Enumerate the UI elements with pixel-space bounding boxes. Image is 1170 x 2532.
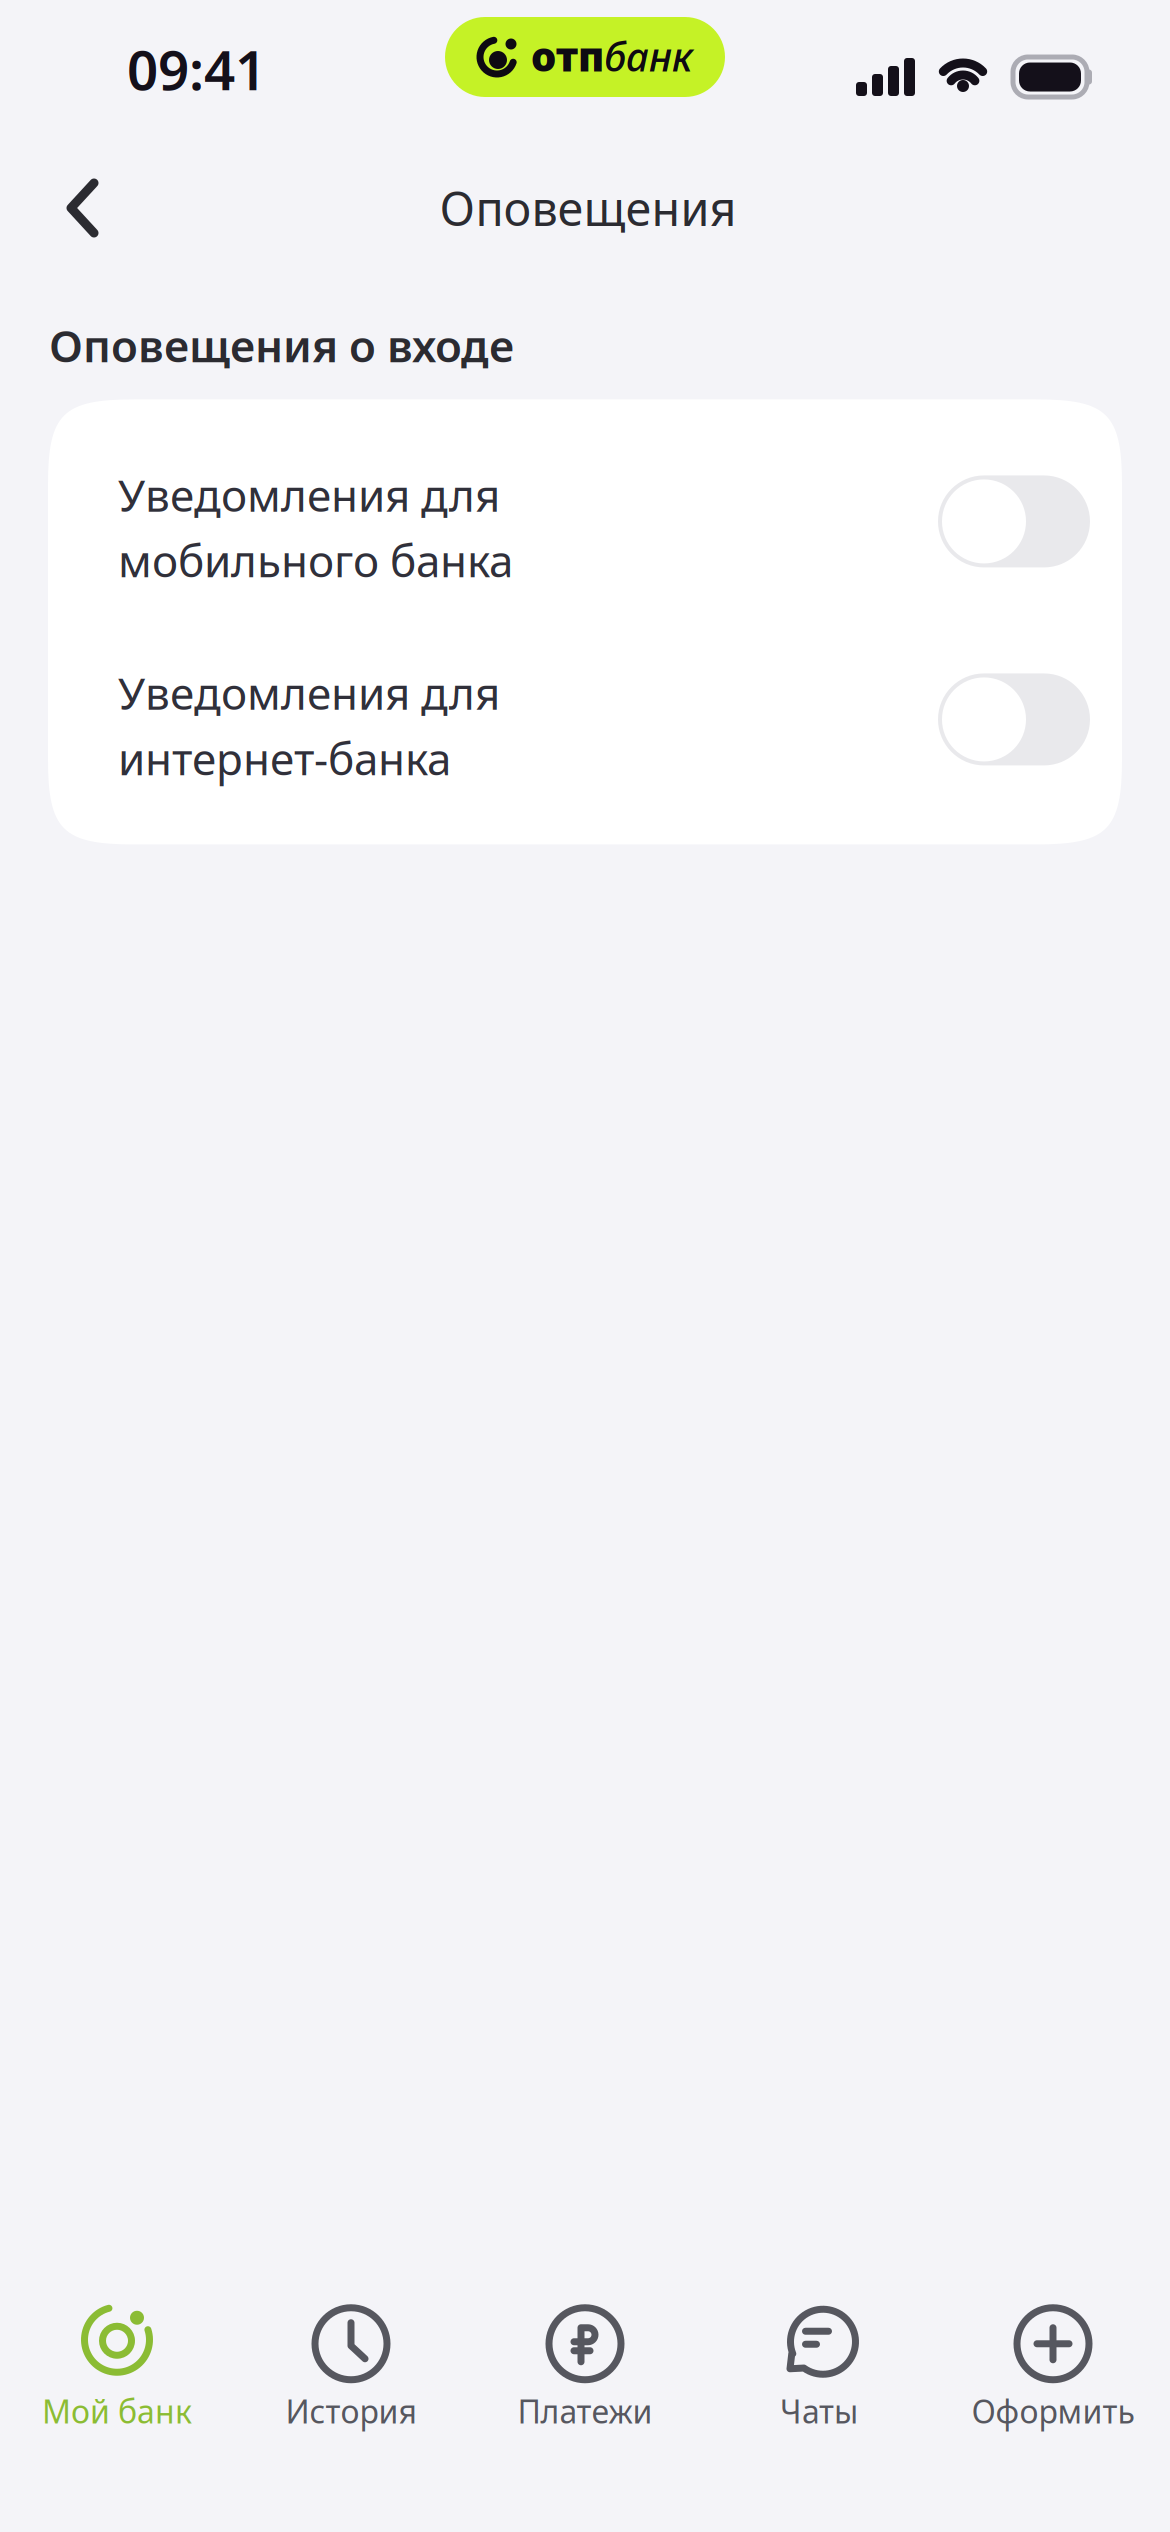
staticText: Уведомления для <box>118 663 500 722</box>
button[interactable]: Чаты <box>702 2296 936 2440</box>
button[interactable]: Оформить <box>936 2296 1170 2440</box>
button[interactable]: Назад <box>38 138 143 260</box>
button[interactable]: Уведомления для <box>48 626 1122 824</box>
staticText: Чаты <box>780 2390 858 2432</box>
button[interactable]: Уведомления для <box>48 428 1122 626</box>
staticText: Платежи <box>517 2390 652 2432</box>
staticText: банк <box>604 29 693 82</box>
staticText: 09:41 <box>127 33 266 105</box>
staticText: Уведомления для <box>118 465 500 524</box>
button[interactable]: История <box>234 2296 468 2440</box>
staticText: Мой банк <box>42 2390 192 2432</box>
staticText: интернет-банка <box>118 729 451 787</box>
staticText: Оповещения о входе <box>49 316 514 374</box>
staticText: отп <box>531 29 604 82</box>
staticText: Оформить <box>971 2390 1134 2432</box>
staticText: История <box>285 2390 416 2432</box>
button[interactable]: Мой банк <box>0 2296 234 2440</box>
staticText: мобильного банка <box>118 531 513 589</box>
staticText: Оповещения <box>439 177 736 239</box>
button[interactable]: Платежи <box>468 2296 702 2440</box>
